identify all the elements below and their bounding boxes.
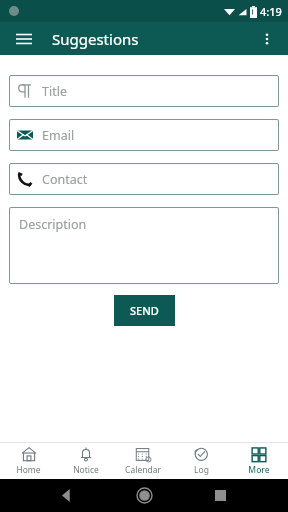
button[interactable]: Home [0, 443, 57, 479]
button[interactable]: Email [9, 119, 279, 151]
button[interactable]: Contact [9, 163, 279, 195]
other: Home [137, 488, 152, 503]
staticText: Home [16, 464, 41, 476]
staticText: Log [194, 464, 209, 476]
button[interactable]: Open navigation menu [8, 23, 40, 55]
button[interactable]: Log [172, 443, 230, 479]
staticText: SEND [130, 303, 159, 318]
staticText: Calendar [125, 464, 161, 476]
button[interactable]: Calendar [114, 443, 172, 479]
staticText: 4:19 [260, 4, 282, 19]
staticText: Contact [42, 171, 88, 188]
button[interactable]: Notice [57, 443, 114, 479]
staticText: Title [42, 83, 67, 100]
button[interactable]: Title [9, 75, 279, 107]
staticText: Description [19, 216, 87, 233]
staticText: Notice [73, 464, 99, 476]
button[interactable]: More options [252, 24, 282, 54]
button[interactable]: More [230, 443, 288, 479]
button[interactable]: SEND [114, 295, 175, 326]
button[interactable]: Description [9, 207, 279, 284]
other: Back [60, 489, 73, 502]
staticText: Email [42, 127, 75, 144]
staticText: Suggestions [52, 29, 139, 49]
staticText: More [248, 464, 270, 476]
